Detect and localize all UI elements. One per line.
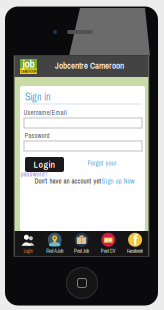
staticText: job [22,57,34,71]
staticText: Post Job [74,248,89,254]
staticText: Forgot your [87,158,116,167]
staticText: Find A Job [46,248,63,254]
staticText: Don't have an account yet [34,176,101,185]
staticText: Facebook [127,248,143,254]
staticText: password? [20,169,47,178]
staticText: Login [23,248,32,254]
staticText: Post CV [101,248,116,254]
staticText: Username/Email [23,108,66,117]
staticText: Jobcentre Cameroon [55,60,124,71]
button[interactable]: Forgot your [87,158,116,167]
button[interactable]: Sign up Now [101,176,134,185]
staticText: Password [24,131,49,140]
staticText: CAMEROON [20,69,36,74]
staticText: Sign in [25,90,51,104]
button[interactable]: Login [14,231,41,256]
button[interactable]: password? [20,169,47,178]
staticText: f [133,232,138,248]
button[interactable]: Find A Job [41,231,68,256]
button[interactable]: Jobcentre Cameroon home [20,59,37,74]
button[interactable]: Post Job [68,231,95,256]
staticText: Sign up Now [101,176,134,185]
staticText: Login [33,158,55,171]
button[interactable]: f [122,231,148,256]
button[interactable]: Login [25,157,64,172]
button[interactable]: Post CV [95,231,122,256]
